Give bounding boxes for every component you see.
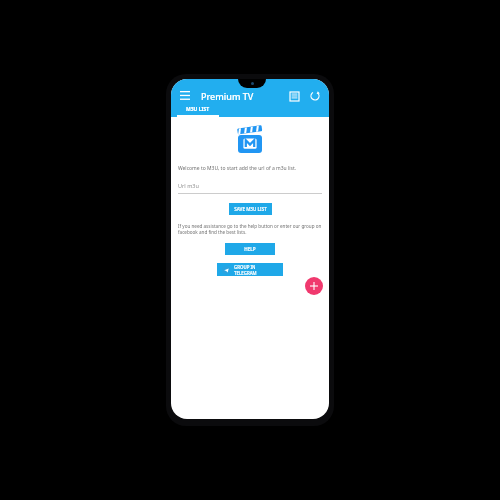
staticText: SAVE M3U LIST (234, 206, 267, 212)
button[interactable]: HELP (225, 243, 275, 255)
button[interactable]: SAVE M3U LIST (229, 203, 272, 215)
staticText: HELP (244, 246, 256, 252)
button[interactable]: Playlists (286, 88, 302, 104)
staticText: Welcome to M3U, to start add the url of … (178, 165, 322, 172)
button[interactable]: Refresh (307, 88, 323, 104)
button[interactable]: M3U LIST (177, 104, 219, 117)
staticText: Premium TV (201, 90, 254, 102)
staticText: GROUP IN TELEGRAM (234, 264, 278, 276)
button[interactable]: Add (305, 277, 323, 295)
staticText: M3U LIST (186, 106, 210, 113)
button[interactable]: Url m3u (178, 182, 322, 194)
button[interactable]: GROUP IN TELEGRAM (217, 263, 283, 276)
staticText: If you need assistance go to the help bu… (178, 223, 322, 235)
staticText: Url m3u (178, 182, 199, 189)
button[interactable]: Open navigation menu (177, 88, 193, 104)
